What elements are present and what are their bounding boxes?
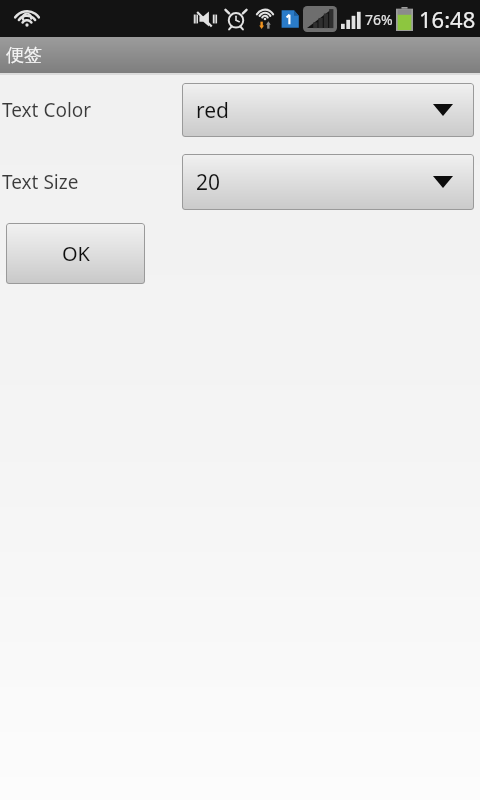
staticText: 便签 [6,44,42,67]
button[interactable]: 20 [182,154,474,210]
staticText: Text Size [2,169,182,195]
staticText: 76% [365,10,393,29]
staticText: OK [62,240,90,267]
staticText: Text Color [2,97,182,123]
button[interactable]: red [182,83,474,137]
button[interactable]: OK [6,223,145,284]
staticText: 16:48 [419,4,476,34]
staticText: red [196,96,230,125]
staticText: 20 [196,168,221,197]
